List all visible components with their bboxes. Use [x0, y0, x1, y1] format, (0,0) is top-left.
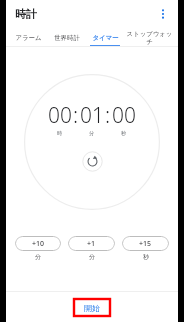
staticText: 秒	[121, 130, 127, 137]
staticText: 分	[35, 253, 41, 261]
button[interactable]: Reset	[82, 151, 103, 172]
staticText: 時	[57, 130, 63, 137]
staticText: +15	[139, 239, 152, 249]
staticText: 秒	[143, 253, 149, 261]
staticText: ストップウォッチ	[126, 30, 173, 46]
staticText: +1	[87, 239, 96, 249]
staticText: タイマー	[92, 34, 119, 42]
button[interactable]: ストップウォッチ	[126, 28, 173, 47]
button[interactable]: 世界時計	[50, 28, 84, 47]
button[interactable]: タイマー	[88, 28, 122, 47]
button[interactable]: More options	[152, 3, 174, 25]
staticText: 00	[48, 101, 72, 130]
staticText: 01	[80, 101, 104, 130]
button[interactable]: +1	[68, 236, 115, 251]
staticText: +10	[32, 239, 45, 249]
staticText: 分	[89, 130, 95, 137]
staticText: 世界時計	[54, 34, 80, 42]
staticText: アラーム	[15, 34, 42, 42]
button[interactable]: +10	[15, 236, 61, 251]
button[interactable]: +15	[122, 236, 169, 251]
button[interactable]: アラーム	[11, 28, 46, 47]
staticText: 開始	[84, 303, 100, 313]
staticText: :	[105, 101, 111, 130]
button[interactable]: 開始	[74, 299, 110, 316]
staticText: :	[73, 101, 79, 130]
staticText: 分	[89, 253, 95, 261]
staticText: 00	[112, 101, 136, 130]
staticText: 時計	[15, 7, 37, 21]
